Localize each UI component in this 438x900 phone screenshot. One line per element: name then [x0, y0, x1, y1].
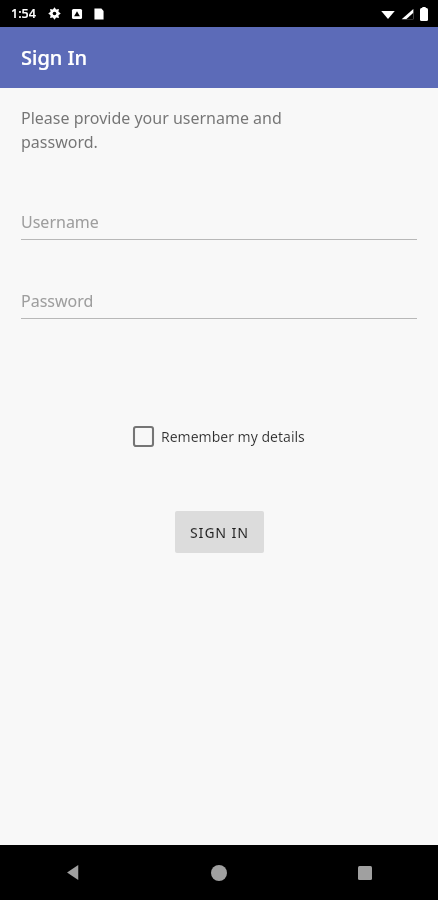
button[interactable]: Home	[146, 845, 292, 900]
staticText: Username	[21, 211, 99, 233]
button[interactable]: Password	[21, 290, 417, 319]
button[interactable]: Remember my details	[132, 425, 307, 448]
button[interactable]: SIGN IN	[175, 511, 264, 553]
staticText: SIGN IN	[190, 523, 249, 542]
staticText: Please provide your username and passwor…	[21, 107, 348, 153]
staticText: Remember my details	[161, 427, 305, 446]
staticText: 1:54	[11, 5, 36, 22]
staticText: Password	[21, 290, 94, 312]
button[interactable]: Back	[0, 845, 146, 900]
button[interactable]: Recent apps	[292, 845, 438, 900]
staticText: Sign In	[21, 44, 88, 71]
button[interactable]: Username	[21, 211, 417, 240]
